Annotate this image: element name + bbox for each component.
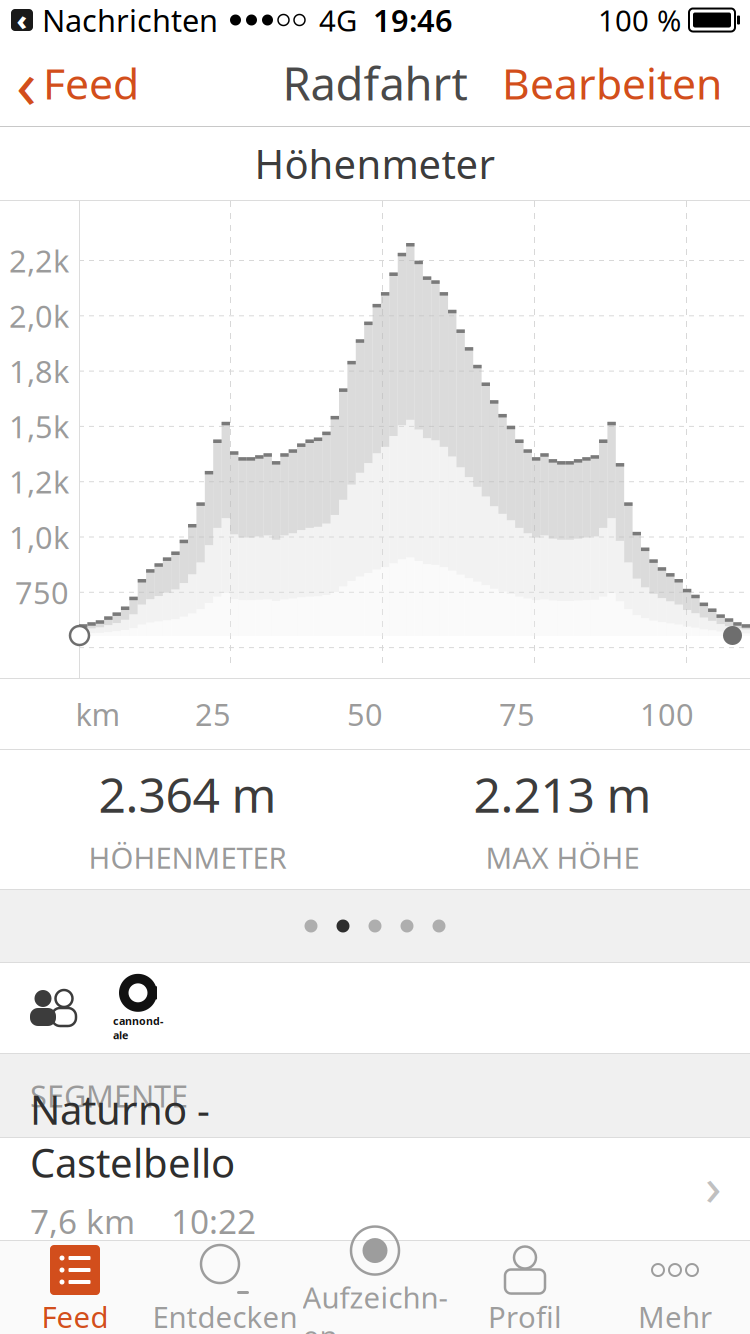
staticText: Feed [41,1297,108,1334]
staticText: 2.213 m [473,762,651,826]
staticText: 750 [15,572,69,613]
staticText: HÖHENMETER [88,838,286,877]
staticText: 50 [347,694,383,734]
staticText: 4G [319,0,357,39]
staticText: ‹ [16,2,27,38]
staticText: Naturno - Castelbello [30,1083,235,1189]
staticText: 2.364 m [98,762,276,826]
staticText: 1,5k [9,406,69,447]
button[interactable]: Ausrüstung Cannondale [76,973,164,1043]
staticText: 2,2k [9,240,69,281]
staticText: 1,8k [9,351,69,391]
staticText: Entdecken [152,1297,297,1334]
staticText: Profil [488,1297,562,1334]
staticText: ‹ [16,39,37,127]
button[interactable]: Feed [0,1239,150,1334]
staticText: Mehr [638,1297,712,1334]
staticText: Nachrichten [34,0,218,40]
staticText: Bearbeiten [502,55,722,111]
button[interactable]: Aufzeichnen [300,1219,450,1334]
staticText: Höhenmeter [254,137,495,190]
staticText: cannondale [113,1014,163,1042]
staticText: km [75,694,120,734]
staticText: Feed [43,55,139,111]
button[interactable]: Entdecken [150,1239,300,1334]
staticText: SEGMENTE [30,1075,188,1116]
staticText: 1,2k [9,461,69,502]
staticText: 100 [640,694,694,734]
staticText: Radfahrt [282,53,467,113]
staticText: 100 % [598,0,681,39]
button[interactable]: Mehr [600,1239,750,1334]
button[interactable]: Naturno - Castelbello [0,1138,750,1232]
staticText: 7,6 km 10:22 23,5 km/h [30,1199,283,1287]
staticText: 2,0k [9,295,69,336]
staticText: Aufzeichnen [302,1277,447,1334]
staticText: › [705,1150,722,1220]
button[interactable]: ‹ [0,33,139,133]
staticText: 1,0k [9,517,69,557]
button[interactable]: Profil [450,1239,600,1334]
staticText: MAX HÖHE [485,838,639,877]
staticText: 19:46 [373,0,453,40]
staticText: 75 [499,694,535,734]
staticText: 25 [195,694,231,734]
button[interactable]: Bearbeiten [502,49,750,117]
button[interactable]: Mitfahrer [0,974,76,1042]
